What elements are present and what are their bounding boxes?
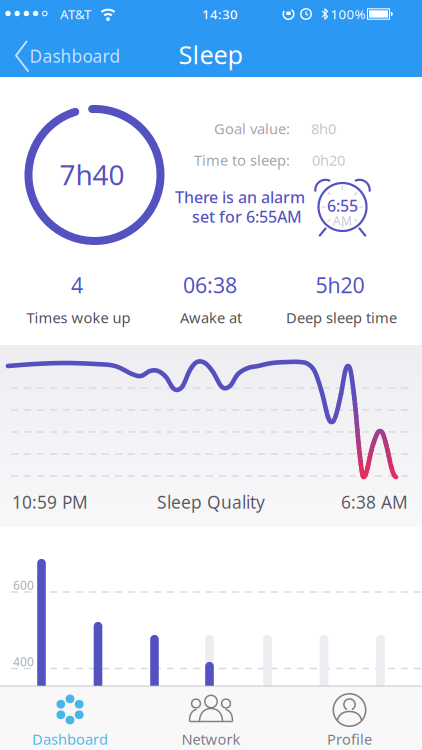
staticText: 06:38 — [183, 271, 237, 299]
staticText: 600 — [13, 577, 34, 593]
staticText: AT&T — [60, 5, 91, 23]
staticText: Sleep — [178, 38, 243, 71]
staticText: Profile — [327, 729, 372, 749]
staticText: 6:38 AM — [341, 490, 408, 513]
staticText: Times woke up — [26, 308, 130, 327]
staticText: 6:55 — [327, 195, 358, 216]
staticText: 7h40 — [59, 156, 124, 193]
staticText: 0h20 — [312, 150, 345, 170]
staticText: 14:30 — [202, 5, 238, 23]
staticText: Dashboard — [29, 44, 120, 67]
staticText: Network — [181, 729, 240, 749]
staticText: set for 6:55AM — [192, 206, 302, 227]
staticText: Sleep Quality — [157, 490, 265, 513]
staticText: Deep sleep time — [286, 308, 397, 327]
staticText: 8h0 — [311, 119, 336, 138]
staticText: 400 — [13, 653, 34, 669]
staticText: 10:59 PM — [12, 490, 88, 513]
staticText: Time to sleep: — [194, 150, 290, 170]
staticText: There is an alarm — [175, 186, 305, 208]
staticText: 5h20 — [315, 271, 364, 299]
staticText: Awake at — [180, 308, 242, 327]
staticText: AM — [333, 212, 352, 228]
staticText: 4 — [71, 271, 83, 299]
staticText: Goal value: — [214, 119, 290, 138]
staticText: 100% — [330, 5, 365, 23]
staticText: Dashboard — [32, 729, 108, 749]
